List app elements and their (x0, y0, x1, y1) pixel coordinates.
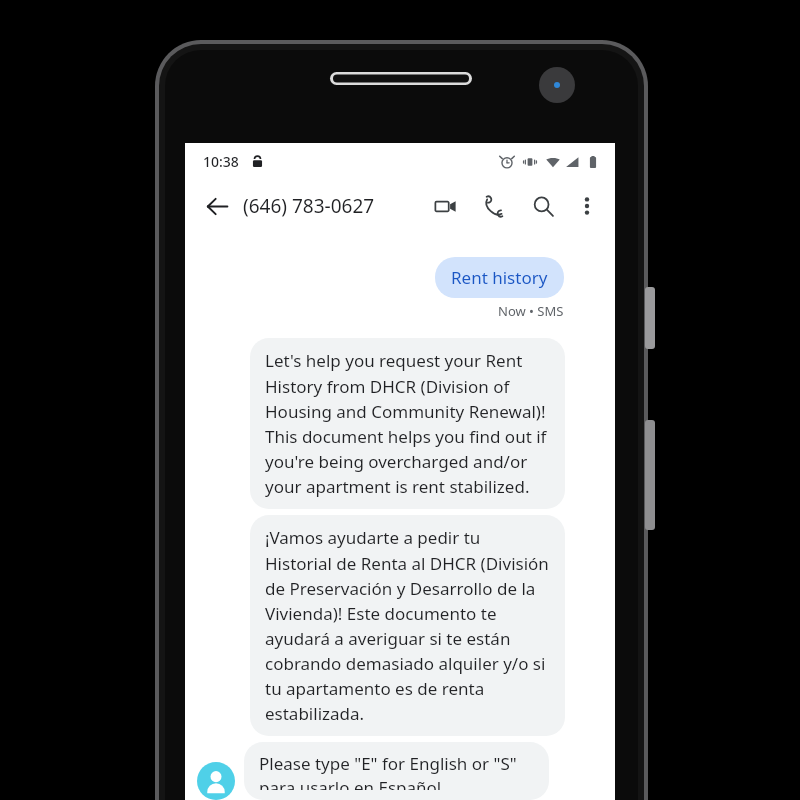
staticText: (646) 783-0627 (243, 193, 375, 219)
staticText: Rent history (451, 266, 548, 289)
button[interactable]: Back (197, 186, 237, 226)
staticText: ¡Vamos ayudarte a pedir tu Historial de … (265, 526, 550, 725)
staticText: Let's help you request your Rent History… (265, 349, 550, 498)
button[interactable]: Video call (425, 186, 465, 226)
staticText: 10:38 (203, 152, 239, 171)
button[interactable]: Call (474, 186, 514, 226)
button[interactable]: More options (567, 186, 607, 226)
staticText: Now • SMS (498, 302, 564, 320)
button[interactable]: Please type "E" for English or "S" para … (244, 742, 549, 800)
button[interactable]: ¡Vamos ayudarte a pedir tu Historial de … (250, 515, 565, 736)
button[interactable]: Rent history (435, 257, 564, 298)
button[interactable]: Search (523, 186, 563, 226)
button[interactable]: Let's help you request your Rent History… (250, 338, 565, 509)
button[interactable]: (646) 783-0627 (243, 187, 375, 225)
staticText: Please type "E" for English or "S" para … (259, 752, 534, 790)
